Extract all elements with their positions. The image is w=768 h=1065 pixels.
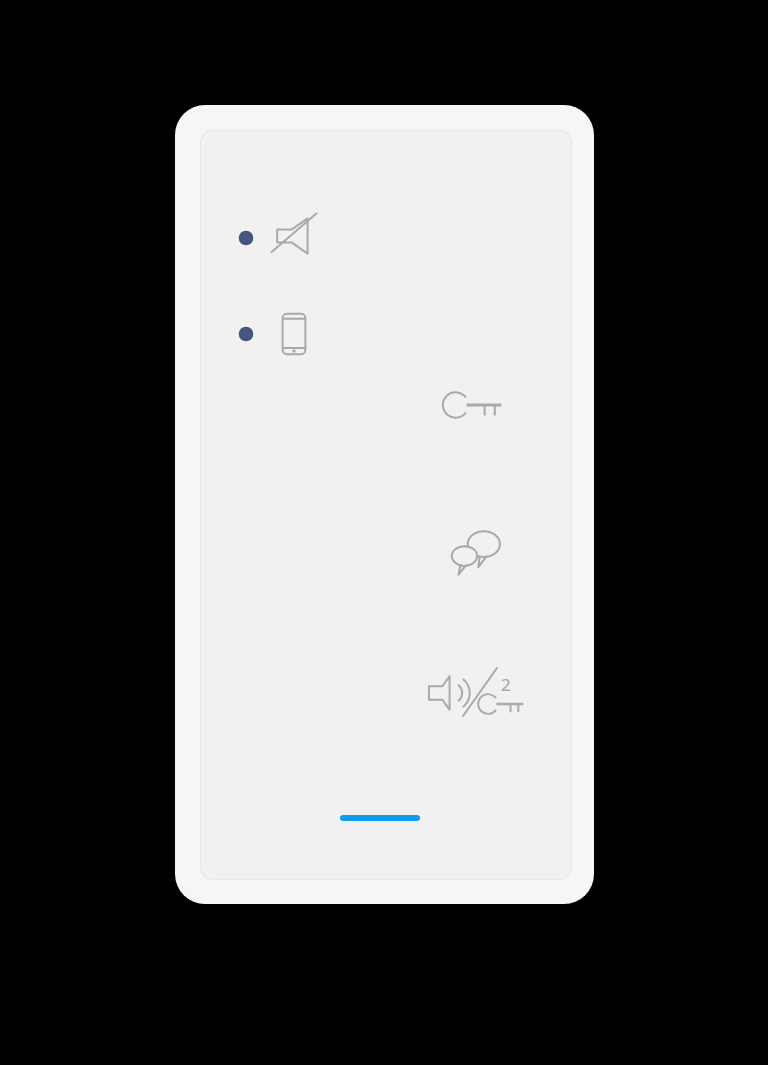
button[interactable]: Continue indicator [340, 815, 420, 821]
staticText: 2 [501, 673, 511, 695]
